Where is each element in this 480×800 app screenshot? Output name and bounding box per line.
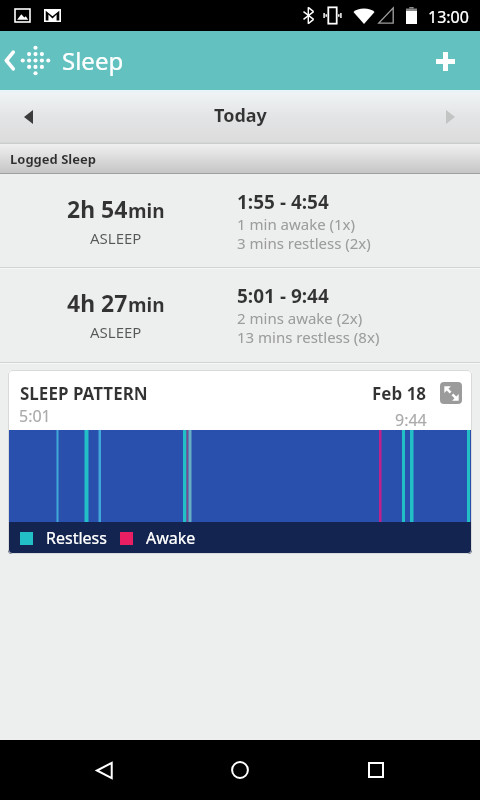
button[interactable]: Home [208, 740, 272, 800]
staticText: 13:00 [428, 6, 469, 28]
staticText: 1 min awake (1x) [237, 214, 356, 234]
staticText: 2 mins awake (2x) [237, 308, 363, 328]
staticText: 13 mins restless (8x) [237, 327, 380, 347]
staticText: 2h 54 [67, 193, 128, 224]
button[interactable]: 2h 54 [0, 174, 480, 267]
staticText: Logged Sleep [10, 150, 96, 168]
staticText: 5:01 - 9:44 [237, 283, 329, 309]
button[interactable]: SLEEP PATTERN [8, 370, 472, 554]
button[interactable]: Previous day [0, 90, 58, 144]
staticText: Awake [146, 527, 196, 549]
button[interactable]: 4h 27 [0, 268, 480, 361]
button[interactable]: Navigate up [0, 31, 124, 90]
staticText: Feb 18 [372, 382, 427, 405]
staticText: 4h 27 [67, 287, 128, 318]
staticText: 9:44 [395, 409, 427, 431]
staticText: ASLEEP [90, 322, 142, 342]
staticText: min [128, 198, 165, 224]
staticText: SLEEP PATTERN [20, 382, 148, 405]
staticText: Restless [46, 527, 107, 549]
staticText: Today [214, 103, 267, 128]
button[interactable]: Recent apps [344, 740, 408, 800]
staticText: 1:55 - 4:54 [237, 189, 329, 215]
button[interactable]: Back [72, 740, 136, 800]
button[interactable]: Expand chart [440, 382, 462, 404]
staticText: ASLEEP [90, 228, 142, 248]
button[interactable]: Next day [422, 90, 480, 144]
staticText: Sleep [62, 44, 124, 77]
staticText: 3 mins restless (2x) [237, 233, 371, 253]
staticText: min [128, 292, 165, 318]
button[interactable]: Add [424, 31, 480, 90]
staticText: 5:01 [19, 405, 51, 427]
